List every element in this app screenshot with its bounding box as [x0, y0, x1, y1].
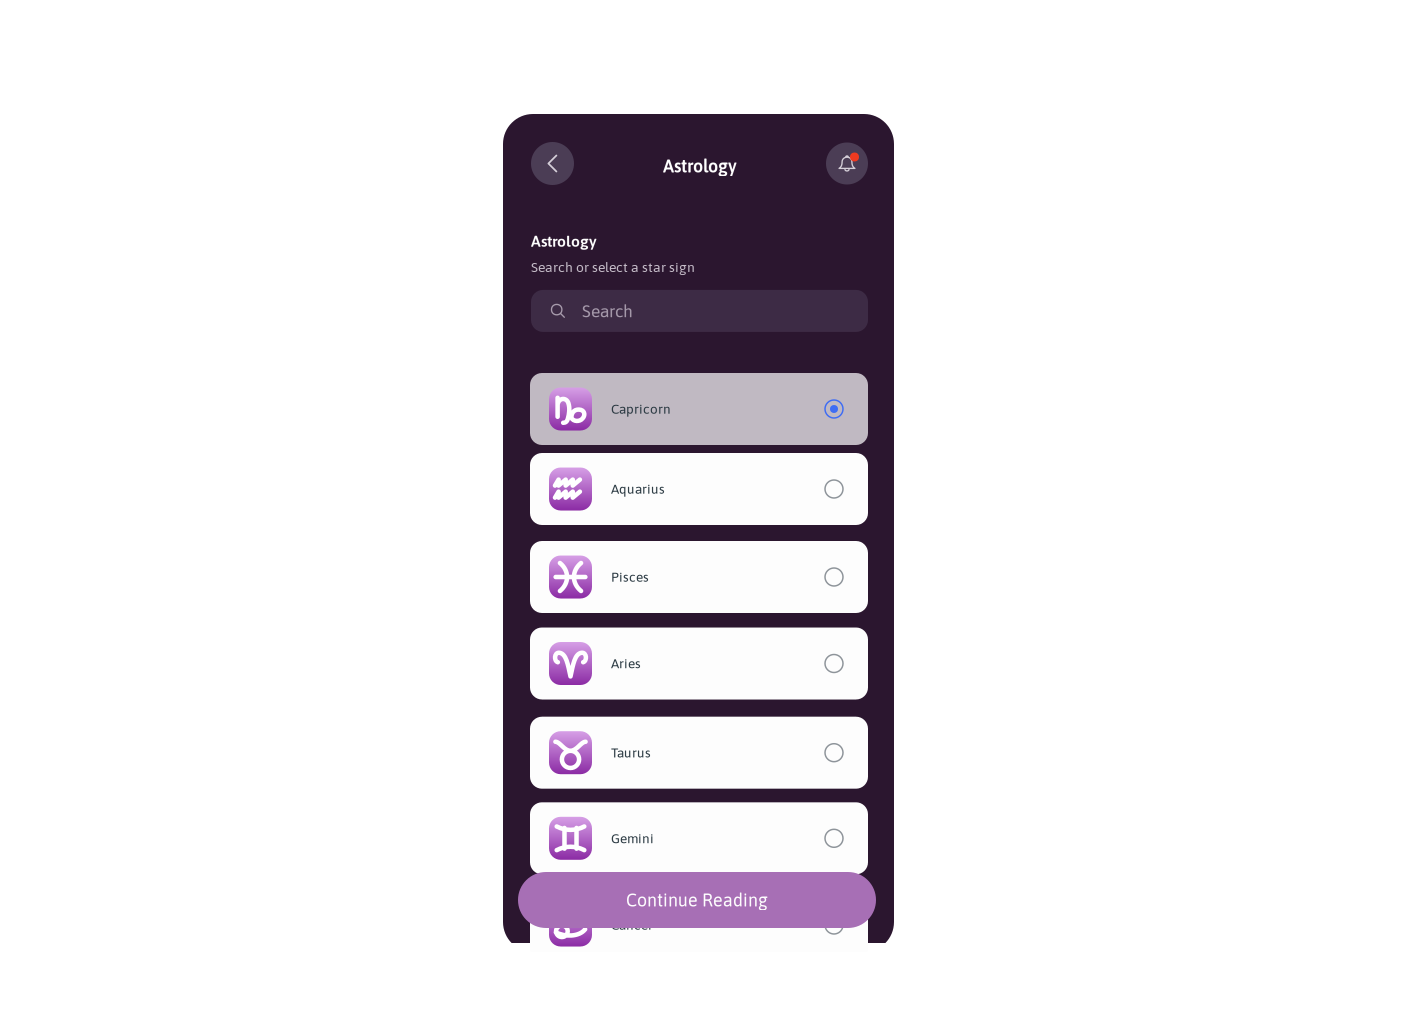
button[interactable]: Capricorn: [530, 373, 868, 445]
staticText: Aquarius: [611, 481, 665, 497]
button[interactable]: Pisces: [530, 541, 868, 613]
staticText: Search: [582, 301, 633, 321]
staticText: Continue Reading: [626, 890, 768, 910]
button[interactable]: Cancer: [530, 889, 868, 961]
button[interactable]: Continue Reading: [518, 872, 876, 928]
button[interactable]: Back: [531, 142, 574, 185]
staticText: Cancer: [611, 917, 653, 933]
staticText: Capricorn: [611, 401, 671, 417]
button[interactable]: Notifications: [826, 142, 868, 184]
staticText: Astrology: [531, 232, 597, 250]
staticText: Astrology: [663, 156, 737, 176]
staticText: Aries: [611, 656, 641, 671]
staticText: Pisces: [611, 569, 649, 585]
button[interactable]: Aries: [530, 627, 868, 699]
button[interactable]: Taurus: [530, 717, 868, 789]
button[interactable]: Gemini: [530, 802, 868, 874]
staticText: Search or select a star sign: [531, 259, 695, 275]
button[interactable]: Aquarius: [530, 453, 868, 525]
staticText: Taurus: [611, 745, 651, 760]
staticText: Gemini: [611, 831, 654, 846]
